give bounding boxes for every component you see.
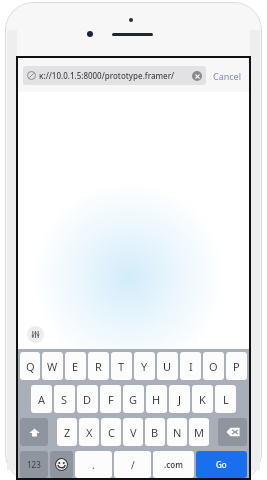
staticText: C	[108, 425, 115, 440]
staticText: L	[223, 392, 229, 407]
staticText: V	[130, 425, 137, 440]
button[interactable]: Z	[57, 418, 77, 446]
staticText: R	[95, 359, 102, 374]
button[interactable]: G	[123, 385, 144, 413]
staticText: S	[61, 392, 68, 407]
staticText: U	[163, 359, 172, 374]
button[interactable]: R	[88, 352, 109, 380]
button[interactable]: V	[123, 418, 143, 446]
staticText: D	[83, 392, 92, 407]
button[interactable]: B	[145, 418, 165, 446]
staticText: B	[151, 425, 159, 440]
staticText: G	[129, 392, 138, 407]
staticText: N	[173, 425, 182, 440]
button[interactable]: L	[215, 385, 236, 413]
staticText: Y	[141, 359, 148, 374]
button[interactable]: /	[114, 451, 151, 478]
button[interactable]: N	[167, 418, 187, 446]
button[interactable]: S	[54, 385, 75, 413]
button[interactable]: .com	[153, 451, 194, 478]
staticText: κ://10.0.1.5:8000/prototype.framer/	[39, 70, 190, 81]
button[interactable]: A	[31, 385, 52, 413]
button[interactable]: F	[100, 385, 121, 413]
staticText: M	[194, 425, 204, 440]
button[interactable]: T	[111, 352, 132, 380]
button[interactable]: .	[75, 451, 112, 478]
button[interactable]: Shift	[20, 418, 48, 446]
button[interactable]: Q	[20, 352, 40, 380]
button[interactable]: Y	[134, 352, 155, 380]
button[interactable]: K	[192, 385, 213, 413]
staticText: /	[131, 458, 135, 472]
button[interactable]: κ://10.0.1.5:8000/prototype.framer/	[23, 66, 206, 85]
button[interactable]: Delete	[218, 418, 247, 446]
staticText: E	[72, 359, 79, 374]
button[interactable]: U	[157, 352, 178, 380]
staticText: P	[233, 359, 240, 374]
staticText: J	[178, 392, 182, 407]
button[interactable]: X	[79, 418, 99, 446]
staticText: H	[152, 392, 161, 407]
button[interactable]: 123	[20, 451, 48, 478]
button[interactable]: Emoji	[50, 451, 73, 478]
staticText: Q	[26, 359, 35, 374]
staticText: Z	[64, 425, 71, 440]
staticText: F	[108, 392, 114, 407]
staticText: I	[189, 359, 193, 374]
staticText: Go	[216, 459, 227, 470]
button[interactable]: J	[169, 385, 190, 413]
button[interactable]: Go	[196, 451, 247, 478]
staticText: Cancel	[213, 70, 242, 82]
button[interactable]: H	[146, 385, 167, 413]
button[interactable]: D	[77, 385, 98, 413]
staticText: W	[47, 359, 58, 374]
button[interactable]: E	[65, 352, 86, 380]
button[interactable]: P	[226, 352, 247, 380]
staticText: .com	[164, 459, 183, 470]
button[interactable]: W	[42, 352, 63, 380]
button[interactable]: Clear text	[192, 71, 202, 81]
button[interactable]: Controls	[27, 326, 44, 343]
staticText: A	[38, 392, 46, 407]
staticText: T	[118, 359, 125, 374]
staticText: 123	[27, 459, 41, 470]
button[interactable]: I	[180, 352, 201, 380]
staticText: .	[92, 458, 95, 472]
button[interactable]: O	[203, 352, 224, 380]
staticText: O	[209, 359, 218, 374]
staticText: X	[86, 425, 93, 440]
staticText: K	[199, 392, 206, 407]
button[interactable]: C	[101, 418, 121, 446]
button[interactable]: M	[189, 418, 209, 446]
button[interactable]: Cancel	[211, 67, 244, 85]
